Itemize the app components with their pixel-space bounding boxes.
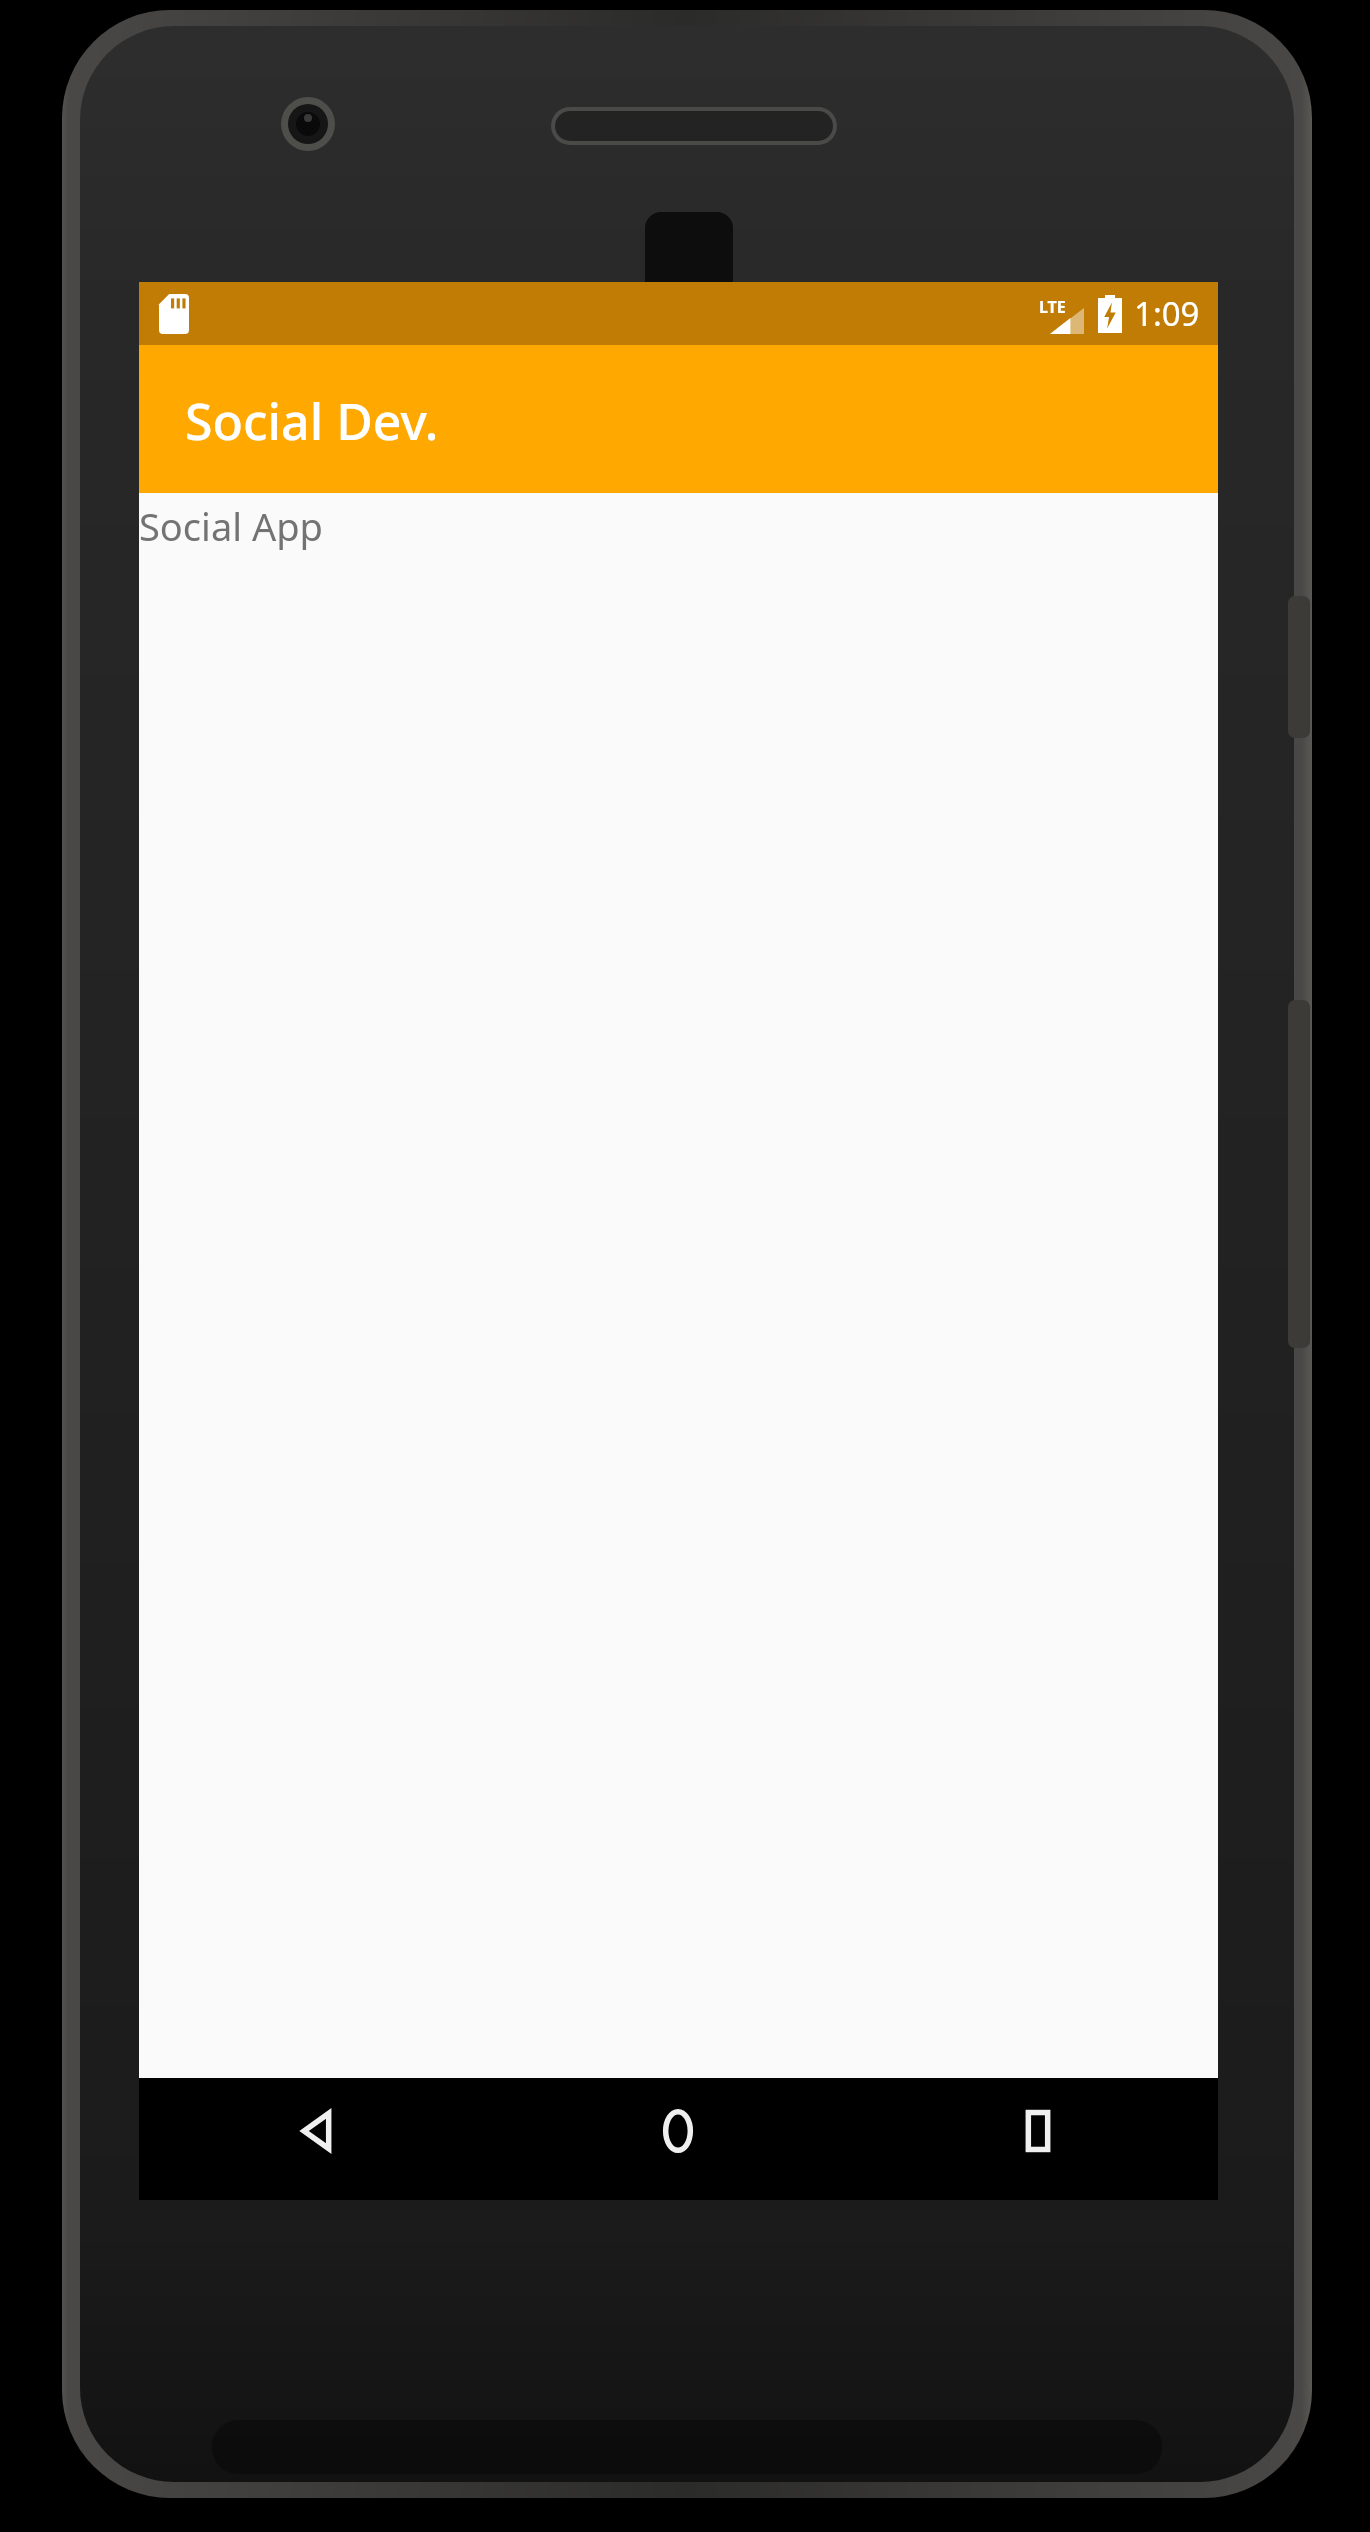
staticText: 1:09 xyxy=(1134,291,1200,336)
staticText: LTE xyxy=(1039,296,1066,318)
button[interactable]: Home xyxy=(498,2078,858,2200)
button[interactable]: Social Dev. xyxy=(139,345,1218,493)
button[interactable]: Recent apps xyxy=(858,2078,1218,2200)
staticText: Social Dev. xyxy=(185,387,439,455)
button[interactable]: Back xyxy=(139,2078,498,2200)
staticText: Social App xyxy=(139,500,323,552)
